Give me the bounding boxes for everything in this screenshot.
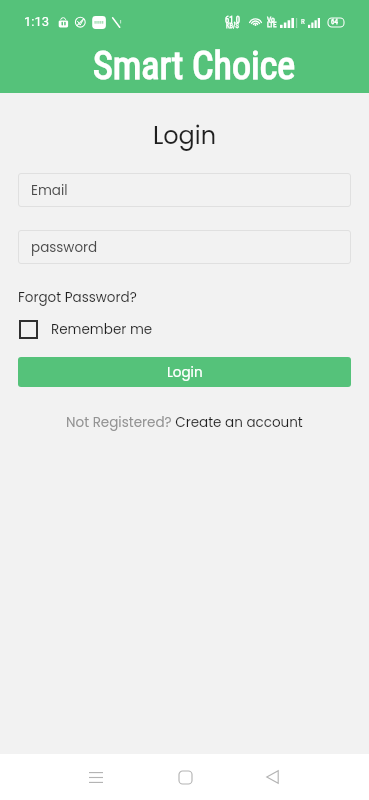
staticText: Vo bbox=[267, 15, 275, 24]
button[interactable]: Forgot Password? bbox=[18, 288, 137, 307]
staticText: Email bbox=[31, 181, 68, 200]
button[interactable]: Back bbox=[250, 755, 294, 799]
staticText: Remember me bbox=[51, 320, 153, 339]
staticText: R bbox=[301, 18, 305, 26]
staticText: Login bbox=[0, 119, 369, 153]
button[interactable]: Not Registered? Create an account bbox=[66, 413, 303, 432]
button[interactable]: password bbox=[18, 230, 351, 264]
button[interactable]: Home bbox=[163, 755, 207, 799]
staticText: 64 bbox=[331, 18, 338, 26]
button[interactable]: Recent apps bbox=[74, 755, 118, 799]
staticText: LTE bbox=[267, 21, 277, 29]
staticText: password bbox=[31, 238, 98, 257]
staticText: Login bbox=[167, 363, 203, 382]
staticText: 61.0 bbox=[225, 15, 240, 25]
button[interactable]: Remember me bbox=[18, 320, 153, 339]
staticText: 1:13 bbox=[24, 14, 50, 29]
staticText: Smart Choice bbox=[93, 44, 296, 89]
staticText: Not Registered? Create an account bbox=[66, 413, 303, 432]
staticText: KB/S bbox=[226, 22, 239, 30]
button[interactable]: Email bbox=[18, 173, 351, 207]
button[interactable]: Login bbox=[18, 357, 351, 387]
